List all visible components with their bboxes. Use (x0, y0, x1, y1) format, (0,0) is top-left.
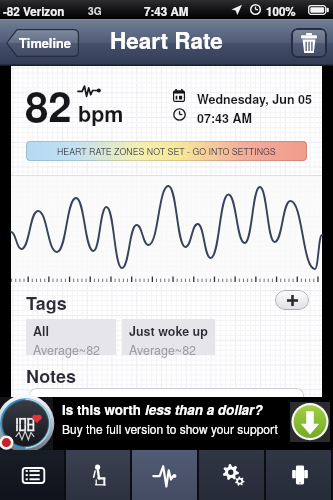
staticText: Tags (26, 290, 67, 316)
staticText: HEART RATE ZONES NOT SET - GO INTO SETTI… (57, 145, 276, 158)
staticText: Buy the full version to show your suppor… (62, 420, 278, 437)
staticText: Is this worth (62, 400, 145, 419)
staticText: Timeline (19, 34, 71, 52)
button[interactable]: Delete (291, 28, 327, 58)
staticText: Average~82 (129, 341, 197, 358)
button[interactable]: Device (266, 450, 333, 500)
button[interactable]: List (0, 450, 66, 500)
staticText: Heart Rate (110, 24, 223, 56)
button[interactable]: Heart rate (132, 450, 199, 500)
button[interactable]: Activity (66, 450, 132, 500)
staticText: 7:43 AM (144, 3, 189, 20)
button[interactable]: HEART RATE ZONES NOT SET - GO INTO SETTI… (26, 141, 307, 161)
staticText: Notes (26, 363, 76, 389)
button[interactable]: Add tag (275, 290, 309, 310)
staticText: 07:43 AM (197, 109, 252, 127)
staticText: All (33, 322, 49, 340)
button[interactable]: Is this worth (0, 397, 333, 450)
staticText: bpm (78, 98, 124, 129)
staticText: Just woke up (129, 322, 208, 340)
button[interactable]: All (26, 319, 116, 355)
staticText: 3G (88, 4, 102, 19)
button[interactable]: Just woke up (122, 319, 215, 355)
button[interactable]: Settings (199, 450, 266, 500)
staticText: 100% (266, 3, 296, 20)
staticText: less than a dollar? (145, 400, 263, 419)
staticText: 82 (25, 75, 72, 135)
staticText: Average~82 (33, 341, 101, 358)
staticText: -82 Verizon (3, 3, 65, 20)
staticText: Wednesday, Jun 05 (197, 90, 312, 108)
button[interactable]: Timeline (5, 29, 79, 57)
